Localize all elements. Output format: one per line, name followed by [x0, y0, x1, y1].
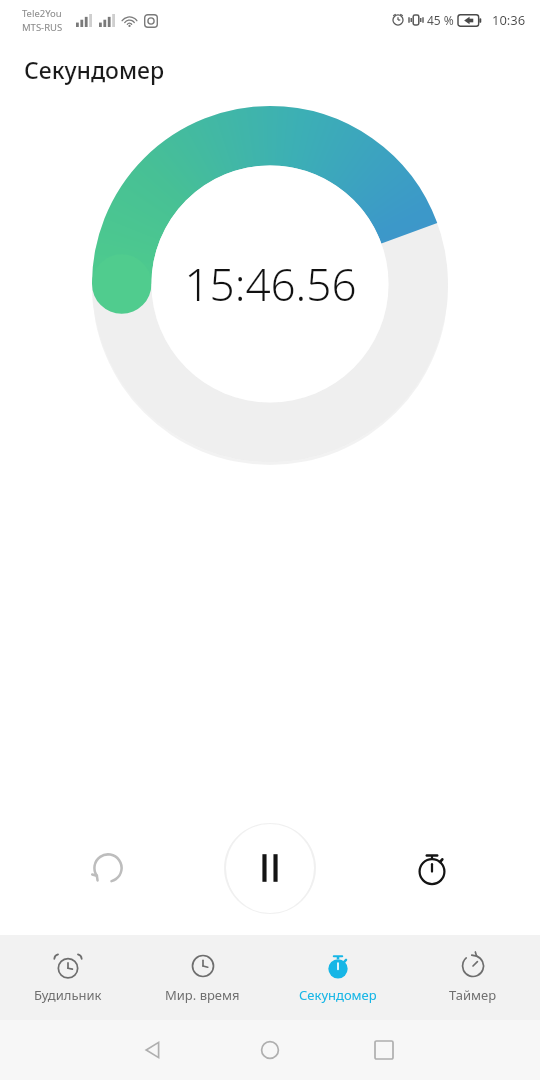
- button[interactable]: Recents: [361, 1027, 407, 1073]
- button[interactable]: Будильник: [0, 944, 135, 1012]
- staticText: Tele2You: [22, 7, 62, 20]
- button[interactable]: Home: [247, 1027, 293, 1073]
- button[interactable]: Lap: [402, 838, 462, 898]
- button[interactable]: Reset: [78, 838, 138, 898]
- staticText: Таймер: [449, 986, 497, 1004]
- button[interactable]: Таймер: [405, 944, 540, 1012]
- staticText: Мир. время: [165, 986, 240, 1004]
- staticText: 15:46.56: [184, 254, 357, 314]
- button[interactable]: Back: [130, 1027, 176, 1073]
- button[interactable]: Мир. время: [135, 944, 270, 1012]
- staticText: Секундомер: [299, 986, 377, 1004]
- staticText: 10:36: [492, 11, 526, 29]
- staticText: 45 %: [427, 12, 454, 28]
- staticText: Секундомер: [24, 54, 165, 85]
- button[interactable]: Pause: [224, 822, 316, 914]
- staticText: Будильник: [34, 986, 102, 1004]
- staticText: MTS-RUS: [22, 21, 63, 34]
- button[interactable]: Секундомер: [270, 944, 405, 1012]
